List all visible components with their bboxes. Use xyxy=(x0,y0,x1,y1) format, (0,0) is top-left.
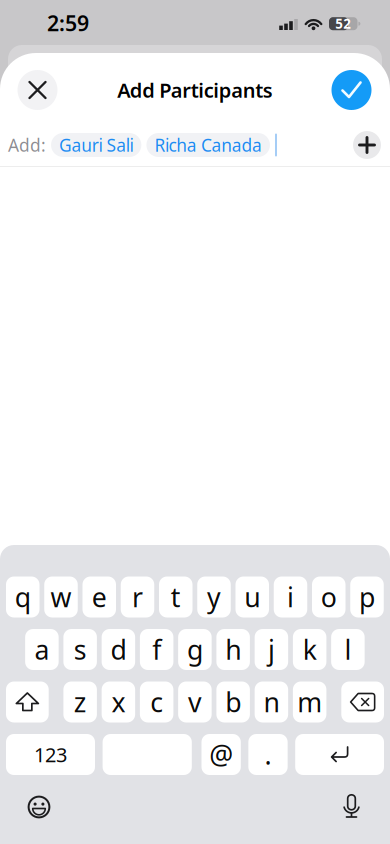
staticText: 123 xyxy=(34,741,67,768)
staticText: Richa Canada xyxy=(154,133,262,156)
button[interactable]: y xyxy=(197,576,231,617)
button[interactable]: Close xyxy=(17,70,57,110)
staticText: e xyxy=(92,579,107,615)
staticText: b xyxy=(225,684,241,720)
button[interactable]: n xyxy=(255,681,288,722)
button[interactable]: . xyxy=(248,734,288,775)
button[interactable]: w xyxy=(44,576,78,617)
button[interactable]: 123 xyxy=(6,734,95,775)
staticText: 52 xyxy=(335,15,351,32)
staticText: p xyxy=(359,579,375,615)
staticText: s xyxy=(74,632,87,667)
button[interactable]: Done xyxy=(331,70,371,110)
staticText: k xyxy=(303,632,317,667)
button[interactable]: Return xyxy=(295,734,384,775)
button[interactable]: Shift xyxy=(6,681,49,722)
staticText: . xyxy=(264,737,271,772)
button[interactable]: g xyxy=(178,629,212,670)
button[interactable]: h xyxy=(216,629,250,670)
button[interactable]: d xyxy=(102,629,135,670)
staticText: c xyxy=(150,684,163,720)
button[interactable]: Delete xyxy=(341,681,384,722)
staticText: Add: xyxy=(8,133,46,156)
staticText: @ xyxy=(209,737,233,772)
staticText: d xyxy=(110,632,126,667)
button[interactable]: t xyxy=(159,576,192,617)
button[interactable]: r xyxy=(121,576,154,617)
button[interactable]: Dictate xyxy=(329,784,373,828)
button[interactable]: Emoji xyxy=(17,785,61,829)
staticText: f xyxy=(152,632,161,667)
staticText: m xyxy=(297,684,322,720)
button[interactable]: c xyxy=(140,681,173,722)
staticText: z xyxy=(74,684,87,720)
staticText: g xyxy=(187,632,203,667)
button[interactable]: @ xyxy=(201,734,241,775)
staticText: h xyxy=(225,632,241,667)
staticText: o xyxy=(321,579,337,615)
button[interactable]: Richa Canada xyxy=(146,133,270,157)
button[interactable]: u xyxy=(235,576,269,617)
button[interactable]: o xyxy=(312,576,345,617)
button[interactable]: Gauri Sali xyxy=(51,133,141,157)
button[interactable]: q xyxy=(6,576,39,617)
staticText: x xyxy=(111,684,125,720)
staticText: Add Participants xyxy=(117,77,273,103)
staticText: l xyxy=(344,632,351,667)
staticText: w xyxy=(50,579,71,615)
button[interactable]: e xyxy=(82,576,116,617)
button[interactable]: p xyxy=(350,576,384,617)
staticText: j xyxy=(268,632,275,667)
button[interactable]: space xyxy=(103,734,192,775)
staticText: n xyxy=(263,684,279,720)
button[interactable]: k xyxy=(293,629,326,670)
staticText: v xyxy=(188,684,202,720)
button[interactable]: i xyxy=(274,576,307,617)
button[interactable]: z xyxy=(63,681,97,722)
staticText: y xyxy=(207,579,221,615)
staticText: r xyxy=(132,579,143,615)
staticText: t xyxy=(171,579,181,615)
staticText: a xyxy=(34,632,49,667)
button[interactable]: b xyxy=(216,681,250,722)
button[interactable]: f xyxy=(140,629,173,670)
button[interactable]: v xyxy=(178,681,212,722)
button[interactable]: x xyxy=(102,681,135,722)
button[interactable]: m xyxy=(293,681,326,722)
button[interactable]: s xyxy=(63,629,97,670)
staticText: 2:59 xyxy=(47,9,89,37)
button[interactable]: l xyxy=(331,629,365,670)
staticText: q xyxy=(15,579,31,615)
staticText: Gauri Sali xyxy=(59,133,133,156)
button[interactable]: j xyxy=(255,629,288,670)
button[interactable]: a xyxy=(25,629,59,670)
staticText: i xyxy=(287,579,294,615)
button[interactable]: Add contact xyxy=(353,131,381,159)
staticText: u xyxy=(244,579,260,615)
